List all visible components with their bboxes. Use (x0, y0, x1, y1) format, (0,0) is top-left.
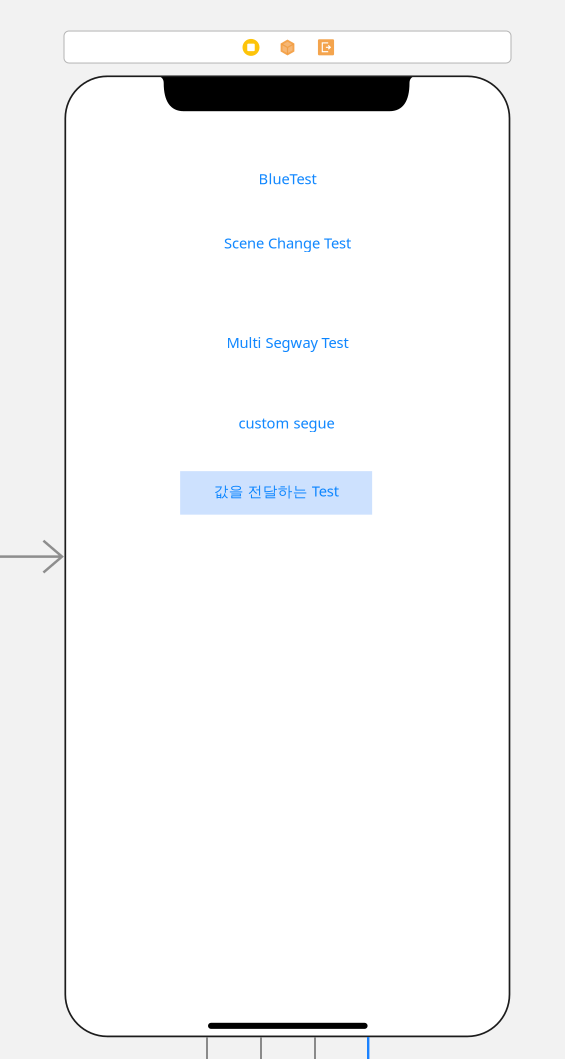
staticText: custom segue (239, 413, 335, 432)
button[interactable]: custom segue (233, 412, 341, 437)
button[interactable]: Scene Change Test (215, 232, 361, 257)
staticText: Multi Segway Test (227, 333, 349, 352)
button[interactable]: View Controller (241, 37, 261, 57)
staticText: 값을 전달하는 Test (214, 481, 339, 501)
staticText: Scene Change Test (224, 233, 351, 252)
button[interactable]: First Responder (277, 37, 297, 57)
button[interactable]: 값을 전달하는 Test (180, 471, 372, 515)
button[interactable]: Multi Segway Test (219, 331, 357, 356)
button[interactable]: BlueTest (254, 168, 322, 193)
button[interactable]: Exit (316, 37, 336, 57)
staticText: BlueTest (259, 169, 317, 188)
